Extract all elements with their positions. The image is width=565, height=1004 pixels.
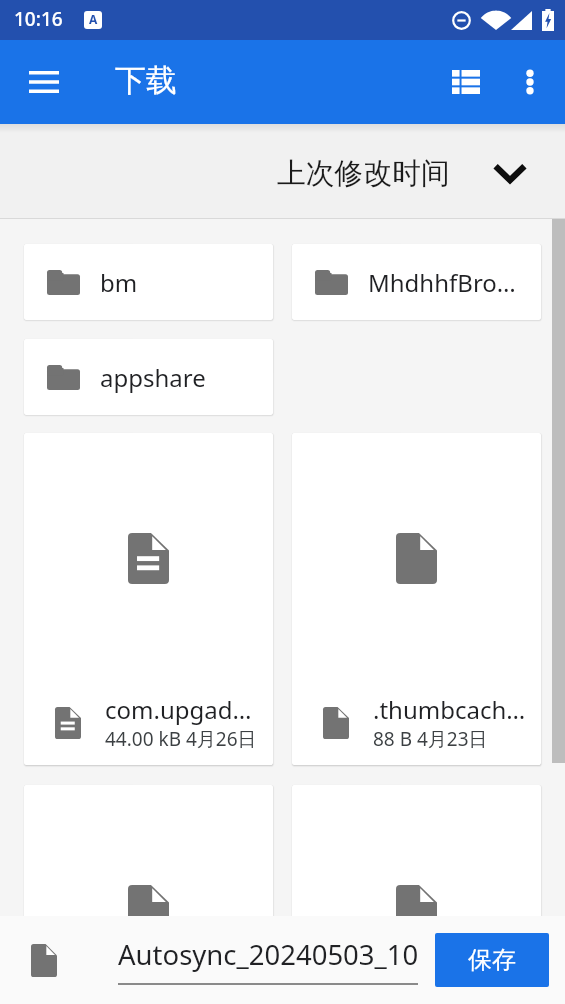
staticText: 保存 bbox=[468, 945, 516, 975]
staticText: .thumbcach… bbox=[373, 693, 526, 726]
button[interactable] bbox=[292, 785, 541, 1004]
staticText: 下载 bbox=[115, 61, 177, 100]
button[interactable]: appshare bbox=[24, 339, 273, 415]
button[interactable]: MhdhhfBro… bbox=[292, 244, 541, 320]
button[interactable]: Menu bbox=[14, 52, 74, 112]
staticText: 上次修改时间 bbox=[277, 155, 450, 191]
staticText: bm bbox=[100, 266, 138, 299]
button[interactable]: bm bbox=[24, 244, 273, 320]
staticText: 10:16 bbox=[14, 6, 63, 32]
staticText: A bbox=[89, 11, 98, 27]
button[interactable]: .thumbcach… bbox=[292, 433, 541, 765]
staticText: 44.00 kB 4月26日 bbox=[105, 726, 257, 752]
button[interactable]: List view bbox=[436, 52, 496, 112]
staticText: Autosync_20240503_10 bbox=[118, 936, 418, 973]
button[interactable]: More options bbox=[500, 52, 560, 112]
staticText: appshare bbox=[100, 361, 206, 394]
staticText: 88 B 4月23日 bbox=[373, 726, 488, 752]
button[interactable]: 保存 bbox=[435, 933, 549, 987]
button[interactable]: com.upgad… bbox=[24, 433, 273, 765]
button[interactable]: 上次修改时间 bbox=[277, 155, 531, 191]
staticText: MhdhhfBro… bbox=[368, 266, 516, 299]
button[interactable] bbox=[24, 785, 273, 1004]
staticText: com.upgad… bbox=[105, 693, 258, 726]
